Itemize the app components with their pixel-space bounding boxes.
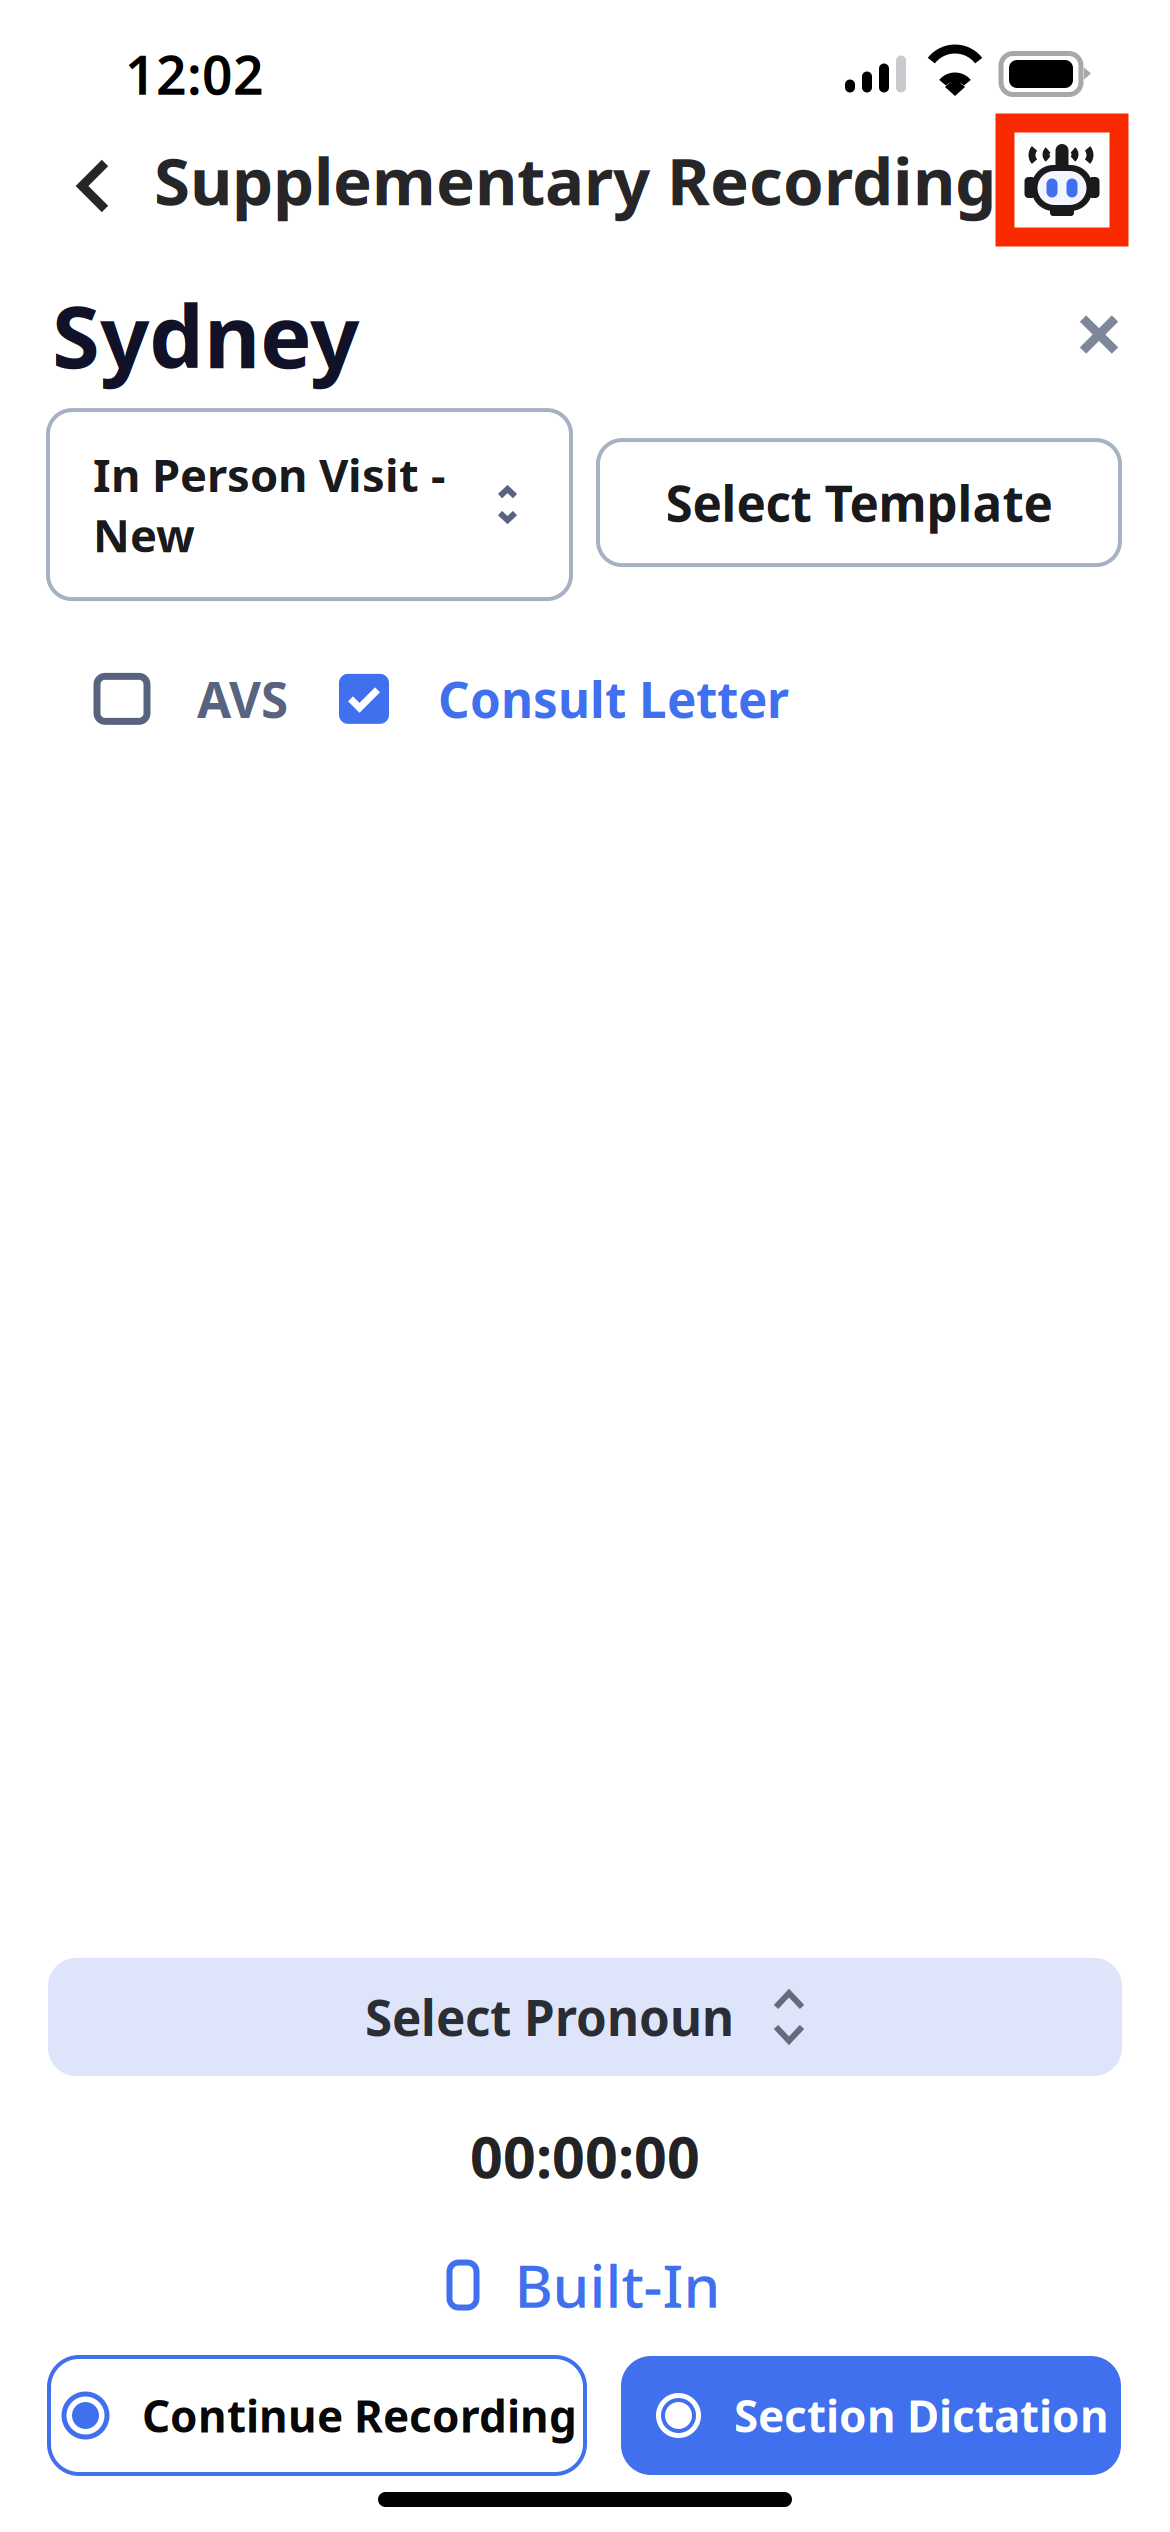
button[interactable]: Close (1058, 293, 1140, 375)
button[interactable]: Consult Letter (339, 650, 789, 748)
staticText: Select Pronoun (365, 1984, 734, 2050)
staticText: Consult Letter (438, 666, 789, 732)
staticText: Built-In (514, 2246, 720, 2324)
button[interactable]: AVS (97, 650, 288, 748)
staticText: In Person Visit - New (93, 444, 446, 565)
button[interactable]: In Person Visit - New (48, 410, 571, 599)
button[interactable]: Back (0, 132, 154, 228)
staticText: AVS (197, 666, 288, 732)
button[interactable]: AI assistant (996, 114, 1128, 246)
staticText: Supplementary Recording (154, 137, 996, 223)
button[interactable]: Select Pronoun (48, 1958, 1122, 2076)
staticText: 00:00:00 (470, 2118, 700, 2194)
button[interactable]: Select Template (598, 410, 1120, 565)
staticText: 12:02 (125, 39, 264, 109)
staticText: Select Template (665, 470, 1052, 535)
staticText: Sydney (52, 277, 359, 392)
staticText: Continue Recording (142, 2386, 577, 2445)
button[interactable]: Section Dictation (621, 2356, 1121, 2475)
staticText: Section Dictation (734, 2386, 1109, 2445)
button[interactable]: Continue Recording (49, 2357, 585, 2474)
